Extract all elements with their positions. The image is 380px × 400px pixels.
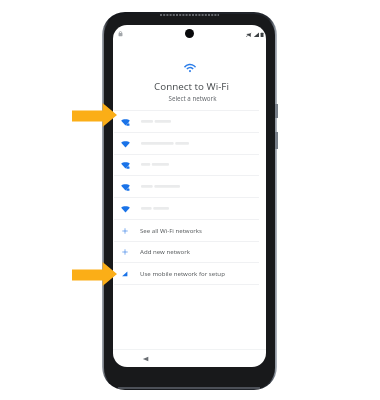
button[interactable] [113, 198, 266, 219]
staticText: Add new network [140, 247, 191, 255]
button[interactable] [113, 133, 266, 154]
button[interactable]: Use mobile network for setup [113, 263, 266, 284]
button[interactable] [113, 111, 266, 132]
button[interactable] [113, 154, 266, 175]
staticText: Select a network [116, 94, 269, 102]
button[interactable]: See all Wi-Fi networks [113, 220, 266, 241]
staticText: Connect to Wi-Fi [115, 80, 268, 93]
button[interactable]: Back [138, 352, 152, 365]
staticText: See all Wi-Fi networks [140, 226, 203, 234]
staticText: Use mobile network for setup [140, 269, 225, 277]
button[interactable] [113, 176, 266, 197]
button[interactable]: Add new network [113, 241, 266, 262]
